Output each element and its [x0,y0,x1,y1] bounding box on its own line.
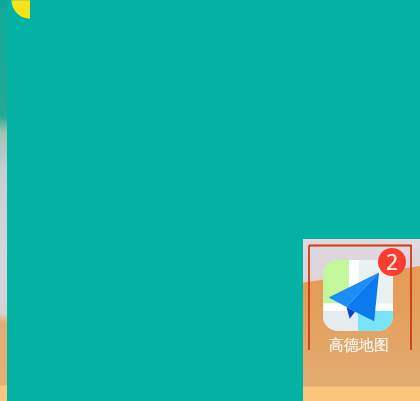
staticText: 2 [386,248,399,276]
button[interactable]: 高德地图 [323,260,393,331]
button[interactable]: 2 unread notifications [378,248,406,276]
staticText: 高德地图 [329,336,389,355]
